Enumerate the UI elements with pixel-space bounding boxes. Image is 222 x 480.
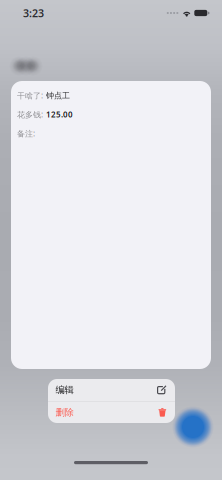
staticText: 钟点工 xyxy=(46,91,70,100)
staticText: 3:23 xyxy=(23,6,44,20)
staticText: 干啥了: xyxy=(17,90,43,101)
staticText: 编辑 xyxy=(55,384,73,396)
staticText: 删除 xyxy=(55,407,73,418)
button[interactable]: Add record xyxy=(172,406,214,448)
staticText: 花多钱: xyxy=(17,109,43,120)
button[interactable]: 编辑 xyxy=(48,379,175,401)
staticText: 备注: xyxy=(17,128,35,139)
staticText: 125.00 xyxy=(46,109,73,120)
button[interactable]: 删除 xyxy=(48,402,175,423)
